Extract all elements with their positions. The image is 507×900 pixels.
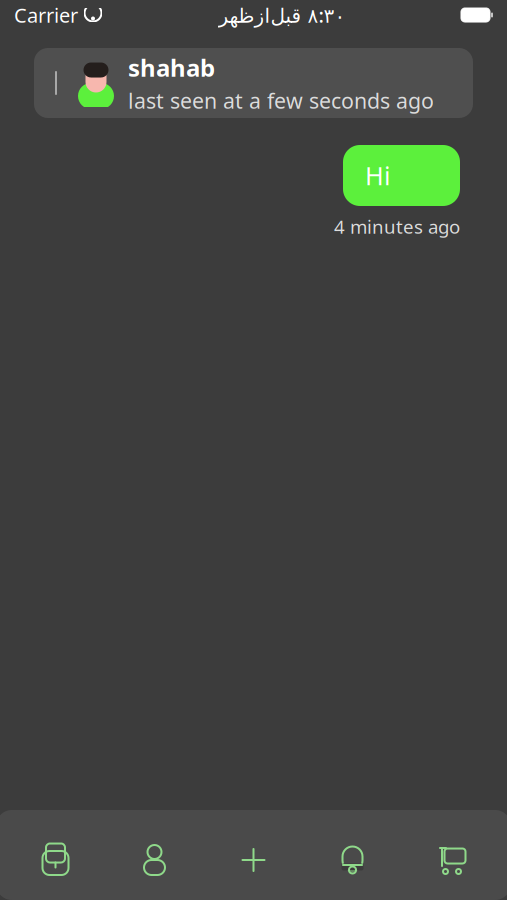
button[interactable]: Cart — [402, 832, 501, 888]
button[interactable]: Profile — [105, 832, 204, 888]
button[interactable]: Add — [204, 832, 303, 888]
button[interactable]: Home — [6, 832, 105, 888]
staticText: ٨:٣٠ قبل‌ازظهر — [218, 2, 345, 28]
staticText: Hi — [365, 159, 391, 192]
staticText: Carrier — [14, 2, 78, 28]
staticText: 4 minutes ago — [334, 214, 460, 239]
button[interactable]: Notifications — [303, 832, 402, 888]
staticText: last seen at a few seconds ago — [128, 86, 434, 115]
button[interactable]: Back — [42, 55, 74, 111]
staticText: shahab — [128, 51, 215, 83]
